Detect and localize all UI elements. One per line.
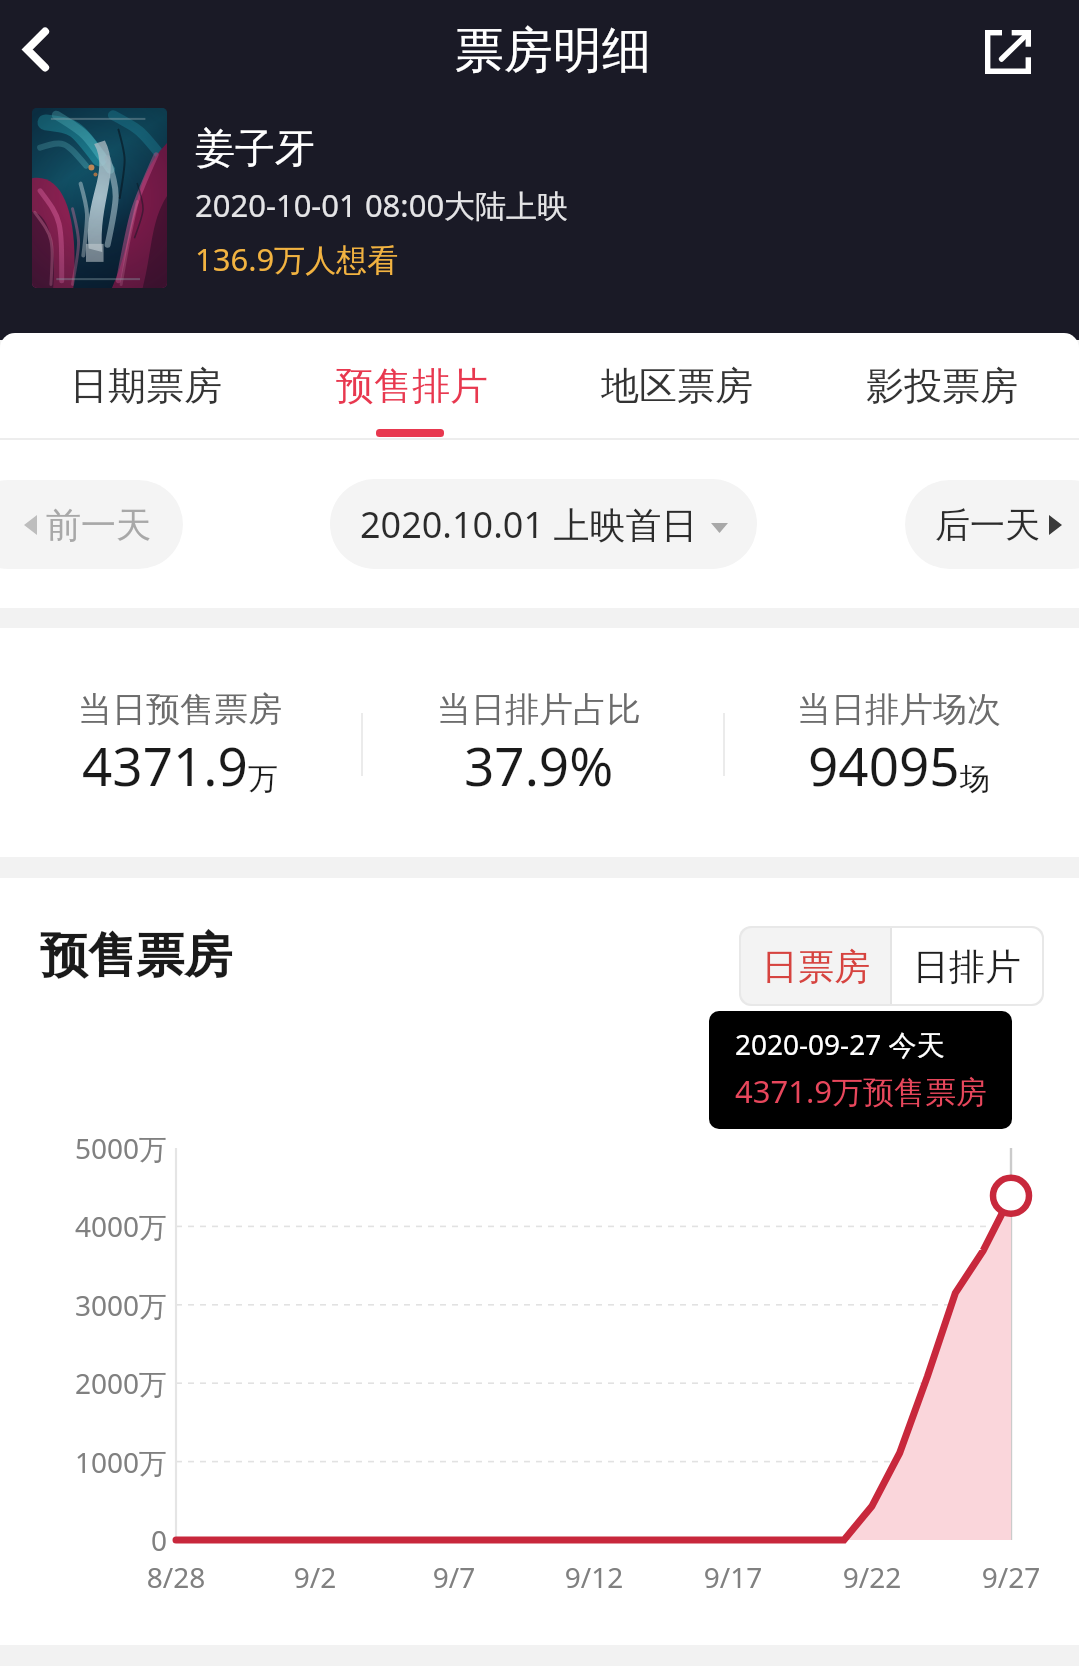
button[interactable]: 2020.10.01 上映首日 [330, 479, 757, 569]
button[interactable]: 地区票房 [544, 334, 809, 440]
staticText: 万 [248, 760, 278, 798]
button[interactable]: 预售排片 [279, 334, 544, 440]
staticText: 4000万 [0, 1207, 167, 1245]
staticText: 9/22 [802, 1558, 942, 1596]
staticText: 4371.9万预售票房 [735, 1070, 987, 1112]
staticText: 8/28 [106, 1558, 246, 1596]
staticText: 9/2 [245, 1558, 385, 1596]
staticText: 当日排片场次 [797, 688, 1001, 731]
button[interactable]: 日排片 [892, 928, 1042, 1004]
button[interactable]: 当日排片场次 [719, 628, 1079, 857]
button[interactable]: 日票房 [741, 928, 890, 1004]
staticText: 2020-10-01 08:00大陆上映 [195, 184, 569, 226]
staticText: 3000万 [0, 1286, 167, 1324]
staticText: 日票房 [762, 944, 870, 989]
button[interactable]: 前一天 [0, 480, 183, 569]
staticText: 场 [960, 760, 990, 798]
staticText: 1000万 [0, 1443, 167, 1481]
button[interactable]: Share [977, 11, 1053, 87]
staticText: 9/7 [384, 1558, 524, 1596]
button[interactable]: 当日预售票房 [0, 628, 359, 857]
button[interactable]: 日期票房 [13, 334, 279, 440]
staticText: 37.9% [464, 729, 614, 801]
staticText: 日期票房 [70, 362, 222, 410]
button[interactable]: 姜子牙 [32, 108, 541, 288]
staticText: 地区票房 [601, 362, 753, 410]
staticText: 预售票房 [40, 926, 232, 986]
staticText: 2000万 [0, 1364, 167, 1402]
button[interactable]: 后一天 [905, 480, 1079, 569]
staticText: 2020.10.01 上映首日 [360, 500, 698, 549]
staticText: 2020-09-27 今天 [735, 1025, 945, 1063]
button[interactable]: 影投票房 [809, 334, 1074, 440]
staticText: 预售排片 [336, 362, 488, 410]
staticText: 9/17 [663, 1558, 803, 1596]
staticText: 当日排片占比 [437, 688, 641, 731]
staticText: 后一天 [935, 503, 1040, 547]
staticText: 当日预售票房 [78, 688, 282, 731]
staticText: 136.9万人想看 [195, 238, 399, 280]
staticText: 影投票房 [866, 362, 1018, 410]
staticText: 4371.9 [82, 729, 248, 801]
staticText: 日排片 [913, 944, 1021, 989]
button[interactable]: Back [4, 11, 80, 87]
staticText: 票房明细 [455, 20, 651, 82]
staticText: 9/27 [941, 1558, 1079, 1596]
button[interactable]: 当日排片占比 [359, 628, 719, 857]
staticText: 5000万 [0, 1129, 167, 1167]
staticText: 0 [0, 1521, 167, 1559]
staticText: 姜子牙 [195, 123, 315, 173]
staticText: 前一天 [46, 503, 151, 547]
staticText: 94095 [808, 729, 960, 801]
staticText: 9/12 [524, 1558, 664, 1596]
